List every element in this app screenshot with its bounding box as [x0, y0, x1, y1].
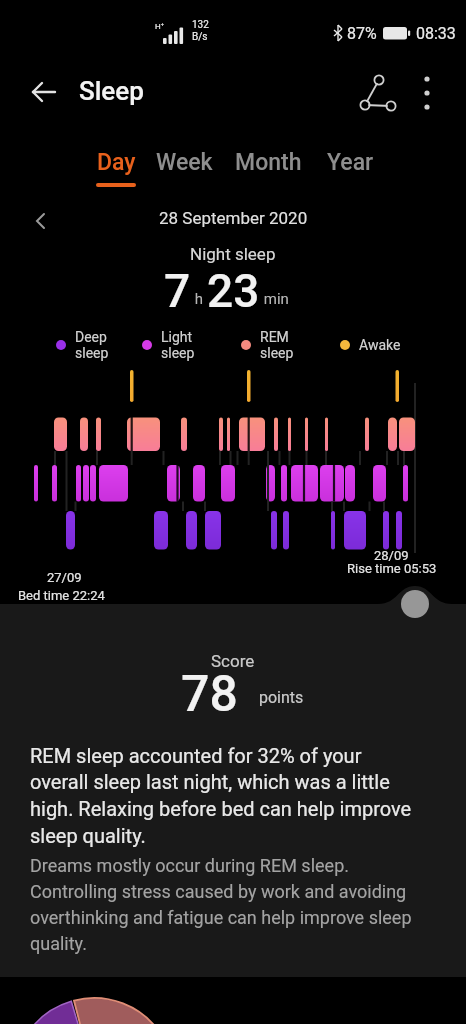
staticText: B/s	[192, 31, 208, 43]
staticText: h	[191, 290, 207, 308]
button[interactable]: Month	[230, 149, 306, 201]
staticText: REM sleep accounted for 32% of your over…	[30, 744, 412, 848]
staticText: 23	[207, 264, 260, 316]
staticText: Week	[156, 149, 213, 176]
staticText: Awake	[359, 337, 401, 353]
staticText: 87%	[347, 24, 377, 43]
staticText: Year	[327, 149, 374, 176]
staticText: Score	[211, 651, 255, 671]
staticText: points	[259, 688, 304, 707]
button[interactable]	[401, 590, 429, 618]
staticText: 28 September 2020	[159, 208, 308, 228]
staticText: Deep sleep	[75, 329, 109, 361]
staticText: Light sleep	[161, 329, 195, 361]
staticText: Night sleep	[190, 244, 276, 264]
staticText: 28/09	[374, 548, 409, 563]
staticText: Bed time 22:24	[18, 588, 105, 603]
button[interactable]	[358, 72, 398, 114]
staticText: Dreams mostly occur during REM sleep. Co…	[30, 855, 412, 954]
staticText: 132	[192, 19, 209, 31]
staticText: 27/09	[47, 570, 82, 585]
staticText: min	[260, 290, 289, 308]
button[interactable]	[34, 213, 48, 229]
staticText: 7	[164, 264, 191, 316]
staticText: Day	[97, 149, 136, 176]
staticText: 08:33	[416, 24, 456, 43]
button[interactable]: Week	[152, 149, 216, 201]
staticText: Month	[235, 149, 302, 176]
staticText: Sleep	[79, 76, 144, 106]
staticText: 78	[181, 665, 238, 715]
button[interactable]	[413, 72, 441, 114]
staticText: H⁺	[155, 22, 164, 31]
button[interactable]	[28, 78, 60, 106]
staticText: REM sleep	[260, 329, 294, 361]
button[interactable]: Year	[320, 149, 380, 201]
staticText: Rise time 05:53	[347, 561, 437, 576]
button[interactable]: Day	[86, 149, 146, 201]
